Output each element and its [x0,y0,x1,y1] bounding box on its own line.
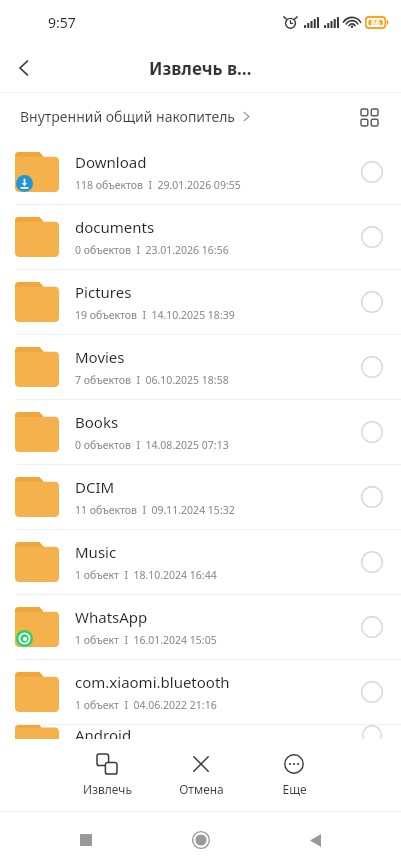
staticText: WhatsApp [75,607,148,627]
staticText: documents [75,217,155,237]
staticText: Извлечь [83,781,132,797]
button[interactable]: Back [287,812,343,868]
button[interactable]: Back [0,44,48,92]
staticText: Books [75,412,119,432]
button[interactable]: Извлечь [70,750,144,801]
staticText: Music [75,542,117,562]
staticText: 0 объектов I 23.01.2026 16:56 [75,243,229,257]
staticText: 7 объектов I 06.10.2025 18:58 [75,373,229,387]
button[interactable]: WhatsApp [0,595,401,659]
staticText: Отмена [179,781,224,797]
button[interactable]: Pictures [0,270,401,334]
staticText: Movies [75,347,125,367]
button[interactable]: DCIM [0,465,401,529]
staticText: 11 объектов I 09.11.2024 15:32 [75,503,235,517]
button[interactable]: Внутренний общий накопитель [20,107,252,126]
staticText: 1 объект I 18.10.2024 16:44 [75,568,217,582]
staticText: Download [75,152,147,172]
button[interactable]: Download [0,140,401,204]
button[interactable]: documents [0,205,401,269]
staticText: Извлечь в… [149,57,252,80]
button[interactable]: Movies [0,335,401,399]
button[interactable]: Home [173,812,229,868]
staticText: 1 объект I 04.06.2022 21:16 [75,698,217,712]
button[interactable]: Recents [58,812,114,868]
button[interactable]: com.xiaomi.bluetooth [0,660,401,724]
button[interactable]: Grid view [351,99,387,135]
button[interactable]: Еще [257,750,331,801]
staticText: DCIM [75,477,115,497]
staticText: 1 объект I 16.01.2024 15:05 [75,633,217,647]
staticText: Еще [282,781,307,797]
staticText: com.xiaomi.bluetooth [75,672,230,692]
button[interactable]: Android [0,725,401,745]
staticText: 0 объектов I 14.08.2025 07:13 [75,438,229,452]
staticText: 19 объектов I 14.10.2025 18:39 [75,308,235,322]
button[interactable]: Music [0,530,401,594]
staticText: 118 объектов I 29.01.2026 09:55 [75,178,241,192]
staticText: Android [75,725,132,745]
staticText: 9:57 [48,13,76,32]
staticText: Pictures [75,282,132,302]
button[interactable]: Отмена [164,750,238,801]
button[interactable]: Books [0,400,401,464]
staticText: 86 [371,17,381,28]
staticText: Внутренний общий накопитель [20,107,235,126]
